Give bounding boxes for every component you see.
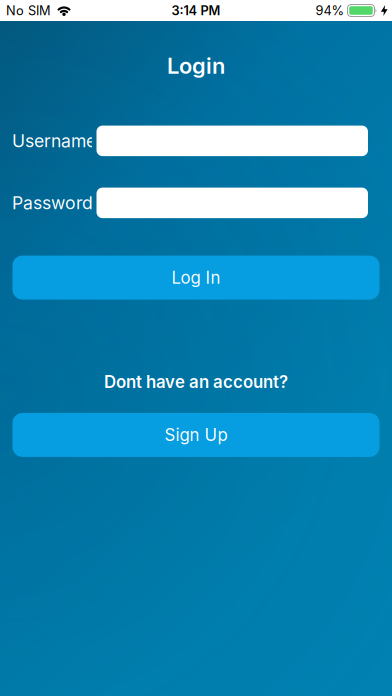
staticText: 3:14 PM — [171, 3, 220, 18]
staticText: Dont have an account? — [104, 372, 288, 392]
staticText: Sign Up — [164, 425, 227, 445]
button[interactable]: Password — [96, 188, 368, 218]
staticText: Username — [12, 130, 96, 151]
staticText: Log In — [171, 267, 220, 288]
staticText: 94% — [315, 3, 344, 18]
staticText: Login — [167, 52, 225, 79]
button[interactable]: Log In — [12, 256, 379, 300]
button[interactable]: Username — [96, 126, 368, 156]
button[interactable]: Sign Up — [12, 413, 379, 457]
staticText: No SIM — [6, 3, 51, 18]
staticText: Password — [12, 192, 93, 213]
